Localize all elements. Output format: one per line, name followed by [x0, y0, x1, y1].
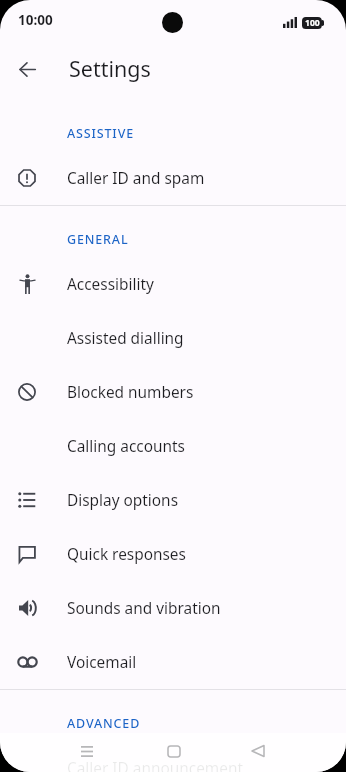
staticText: Display options [67, 490, 178, 511]
staticText: Calling accounts [67, 436, 185, 457]
button[interactable]: Home [154, 739, 194, 763]
button[interactable]: Caller ID and spam [0, 151, 346, 205]
staticText: Caller ID and spam [67, 168, 205, 189]
staticText: Accessibility [67, 274, 154, 295]
staticText: Caller ID announcement [67, 758, 243, 772]
staticText: ASSISTIVE [67, 125, 134, 142]
staticText: Sounds and vibration [67, 598, 221, 619]
button[interactable]: Voicemail [0, 635, 346, 689]
staticText: 100 [305, 17, 320, 29]
staticText: Quick responses [67, 544, 186, 565]
button[interactable]: Assisted dialling [0, 311, 346, 365]
staticText: Blocked numbers [67, 382, 194, 403]
button[interactable]: Blocked numbers [0, 365, 346, 419]
button[interactable]: Recent apps [67, 739, 107, 763]
button[interactable]: Back [4, 47, 50, 93]
staticText: ADVANCED [67, 715, 141, 732]
staticText: GENERAL [67, 231, 129, 248]
staticText: Voicemail [67, 652, 137, 673]
button[interactable]: Sounds and vibration [0, 581, 346, 635]
button[interactable]: Back [238, 739, 278, 763]
staticText: 10:00 [18, 11, 53, 29]
button[interactable]: Accessibility [0, 257, 346, 311]
button[interactable]: Quick responses [0, 527, 346, 581]
button[interactable]: Caller ID announcement [0, 741, 346, 772]
staticText: Settings [69, 54, 151, 83]
button[interactable]: Calling accounts [0, 419, 346, 473]
button[interactable]: Display options [0, 473, 346, 527]
staticText: Assisted dialling [67, 328, 184, 349]
